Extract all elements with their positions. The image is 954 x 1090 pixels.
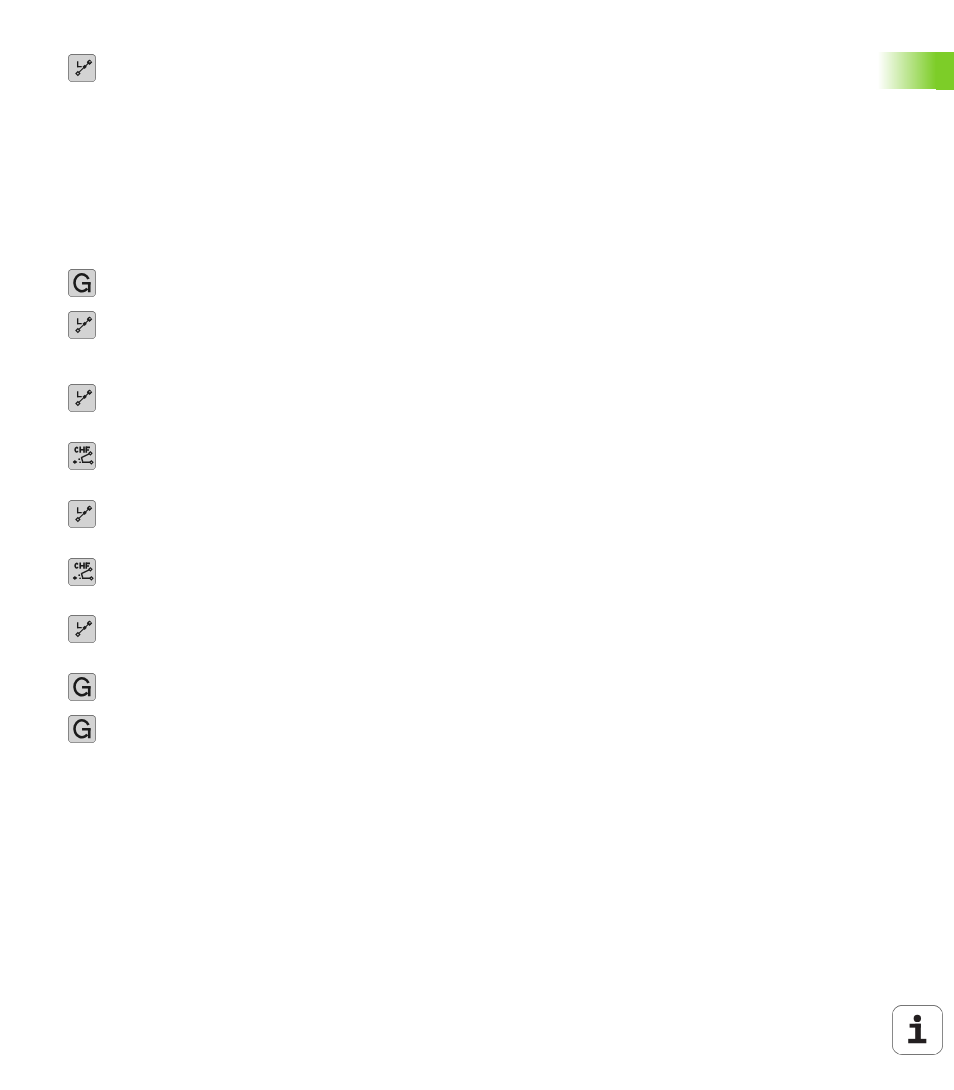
button[interactable]: Missing glyph — [68, 311, 96, 339]
button[interactable]: Missing glyph — [68, 558, 96, 586]
button[interactable]: Missing glyph — [68, 500, 96, 528]
button[interactable]: Missing glyph — [68, 615, 96, 643]
button[interactable]: Missing glyph — [68, 715, 96, 743]
button[interactable]: Missing glyph — [68, 54, 96, 82]
button[interactable]: Missing glyph — [68, 269, 96, 297]
button[interactable]: Info — [892, 1005, 943, 1055]
button[interactable]: Missing glyph — [68, 384, 96, 412]
button[interactable]: Missing glyph — [68, 673, 96, 701]
button[interactable]: Missing glyph — [68, 442, 96, 470]
